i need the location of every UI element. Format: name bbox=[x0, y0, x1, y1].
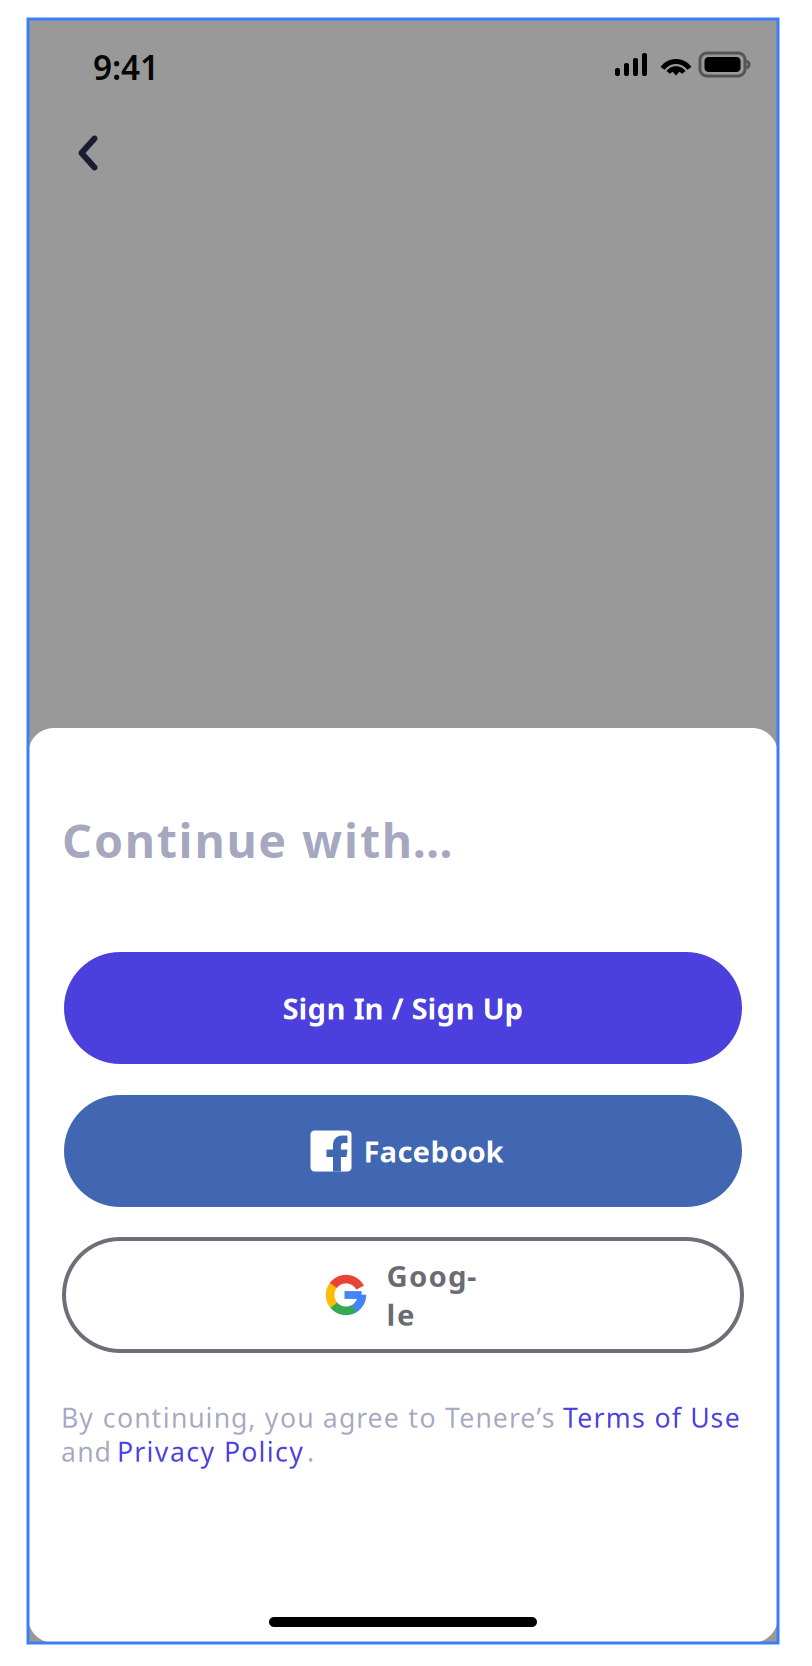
button[interactable]: Sign In / Sign Up bbox=[64, 952, 742, 1064]
button[interactable]: Google bbox=[64, 1239, 742, 1351]
staticText: . bbox=[307, 1434, 314, 1469]
button[interactable]: Terms of Use bbox=[563, 1400, 741, 1435]
staticText: Facebook bbox=[363, 1131, 503, 1170]
staticText: 9:41 bbox=[93, 45, 159, 89]
staticText: Sign In / Sign Up bbox=[282, 988, 523, 1027]
button[interactable]: Facebook bbox=[64, 1095, 742, 1207]
button[interactable]: Privacy Policy bbox=[117, 1434, 309, 1469]
staticText: Privacy Policy bbox=[117, 1434, 303, 1469]
staticText: Terms of Use bbox=[563, 1400, 740, 1435]
staticText: Continue with… bbox=[62, 809, 454, 871]
staticText: and bbox=[61, 1434, 110, 1469]
button[interactable]: Back bbox=[46, 111, 130, 195]
staticText: Google bbox=[386, 1256, 476, 1334]
staticText: By continuing, you agree to Tenere’s bbox=[61, 1400, 555, 1435]
